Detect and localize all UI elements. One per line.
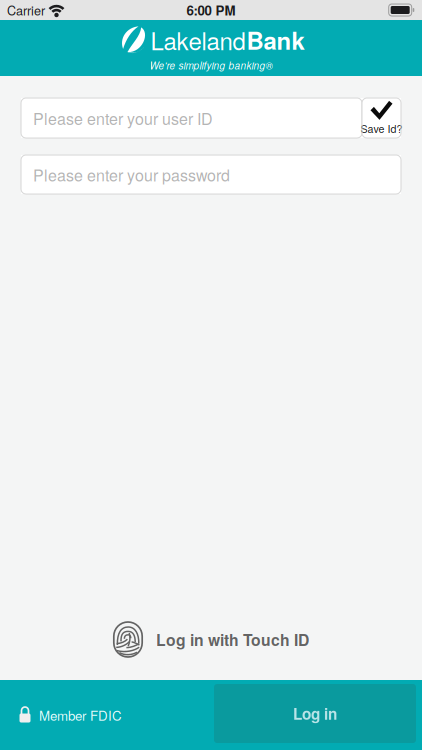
button[interactable]: Please enter your user ID bbox=[21, 98, 362, 138]
staticText: Please enter your password bbox=[33, 163, 230, 186]
staticText: Bank bbox=[246, 23, 304, 57]
staticText: Lakeland bbox=[150, 23, 245, 57]
staticText: Log in bbox=[293, 702, 337, 724]
button[interactable]: Save Id bbox=[362, 98, 401, 138]
button[interactable]: Log in with Touch ID bbox=[113, 621, 309, 658]
staticText: Carrier bbox=[7, 1, 45, 19]
button[interactable]: Please enter your password bbox=[21, 155, 401, 194]
staticText: We're simplifying banking® bbox=[149, 58, 272, 72]
button[interactable]: Log in bbox=[214, 684, 416, 743]
staticText: Member FDIC bbox=[39, 705, 122, 725]
staticText: 6:00 PM bbox=[186, 0, 235, 20]
button[interactable]: Member FDIC bbox=[0, 680, 214, 750]
staticText: Log in with Touch ID bbox=[156, 628, 309, 651]
staticText: Please enter your user ID bbox=[33, 106, 213, 129]
staticText: Save Id? bbox=[360, 121, 402, 136]
